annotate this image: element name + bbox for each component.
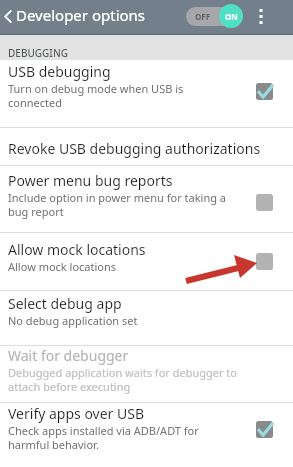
button[interactable]: Revoke USB debugging authorizations (0, 128, 293, 165)
staticText: Turn on debug mode when USB is connected (8, 81, 184, 110)
staticText: USB debugging (8, 62, 111, 81)
staticText: Developer options (16, 5, 146, 25)
button[interactable]: Power menu bug reports (0, 166, 293, 232)
staticText: OFF (195, 11, 211, 22)
staticText: Wait for debugger (8, 346, 129, 365)
button[interactable]: Select debug app (0, 291, 293, 345)
button[interactable] (259, 9, 263, 25)
staticText: Power menu bug reports (8, 171, 173, 190)
staticText: Include option in power menu for taking … (8, 190, 226, 219)
staticText: Revoke USB debugging authorizations (8, 139, 261, 158)
staticText: Verify apps over USB (8, 404, 145, 423)
staticText: ON (225, 11, 238, 22)
button[interactable]: Allow mock locations (0, 233, 293, 290)
staticText: Check apps installed via ADB/ADT for har… (8, 423, 199, 452)
staticText: Debugged application waits for debugger … (8, 365, 237, 394)
staticText: Select debug app (8, 294, 122, 313)
staticText: Allow mock locations (8, 240, 146, 259)
button[interactable] (256, 194, 273, 211)
staticText: No debug application set (8, 313, 138, 328)
staticText: DEBUGGING (8, 46, 68, 60)
button[interactable]: USB debugging (0, 60, 293, 127)
button[interactable]: Verify apps over USB (0, 403, 293, 467)
button[interactable]: Wait for debugger (0, 346, 293, 402)
button[interactable] (256, 253, 273, 270)
button[interactable]: OFF (186, 4, 243, 28)
button[interactable] (256, 421, 273, 438)
staticText: Allow mock locations (8, 259, 117, 274)
button[interactable] (256, 83, 273, 100)
button[interactable] (4, 10, 12, 23)
